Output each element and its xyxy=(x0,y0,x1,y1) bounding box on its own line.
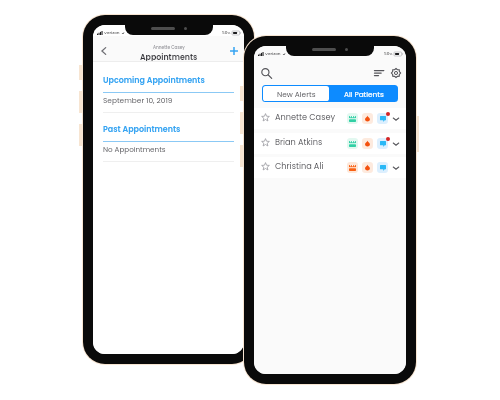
staticText: All Patients xyxy=(344,89,384,99)
staticText: Annette Casey xyxy=(275,111,336,122)
button[interactable]: Favorite xyxy=(254,133,406,154)
staticText: 50% xyxy=(384,51,393,57)
button[interactable]: New Alerts xyxy=(263,86,329,101)
button[interactable]: Expand row xyxy=(392,164,400,172)
button[interactable]: Search xyxy=(260,67,272,79)
button[interactable]: Messages xyxy=(377,162,388,173)
button[interactable]: Favorite xyxy=(261,113,270,122)
button[interactable]: Settings xyxy=(390,67,402,79)
button[interactable]: No Appointments xyxy=(93,142,244,162)
staticText: September 10, 2019 xyxy=(103,95,173,105)
button[interactable]: Filter xyxy=(373,67,385,79)
button[interactable]: Messages xyxy=(377,138,388,149)
staticText: Past Appointments xyxy=(103,124,181,135)
button[interactable]: September 10, 2019 xyxy=(93,93,244,113)
button[interactable]: Schedule xyxy=(347,113,358,124)
button[interactable]: Vitals xyxy=(362,138,373,149)
button[interactable]: Messages xyxy=(377,113,388,124)
staticText: Upcoming Appointments xyxy=(103,75,205,86)
button[interactable]: Favorite xyxy=(254,157,406,178)
button[interactable]: Vitals xyxy=(362,162,373,173)
button[interactable]: Favorite xyxy=(261,138,270,147)
staticText: Verizon xyxy=(265,51,281,57)
button[interactable]: Add appointment xyxy=(228,45,240,57)
button[interactable]: Favorite xyxy=(261,162,270,171)
button[interactable]: Back xyxy=(98,45,110,57)
button[interactable]: Favorite xyxy=(254,108,406,129)
button[interactable]: Schedule xyxy=(347,138,358,149)
button[interactable]: Schedule xyxy=(347,162,358,173)
staticText: Appointments xyxy=(140,52,198,63)
staticText: New Alerts xyxy=(277,89,316,99)
staticText: No Appointments xyxy=(103,144,166,154)
button[interactable]: All Patients xyxy=(330,85,398,102)
staticText: Verizon xyxy=(104,30,120,36)
staticText: 50% xyxy=(222,30,231,36)
button[interactable]: Vitals xyxy=(362,113,373,124)
button[interactable]: Expand row xyxy=(392,115,400,123)
staticText: Annette Casey xyxy=(153,44,185,50)
staticText: Christina Ali xyxy=(275,160,324,171)
button[interactable]: Expand row xyxy=(392,140,400,148)
staticText: Brian Atkins xyxy=(275,136,323,147)
